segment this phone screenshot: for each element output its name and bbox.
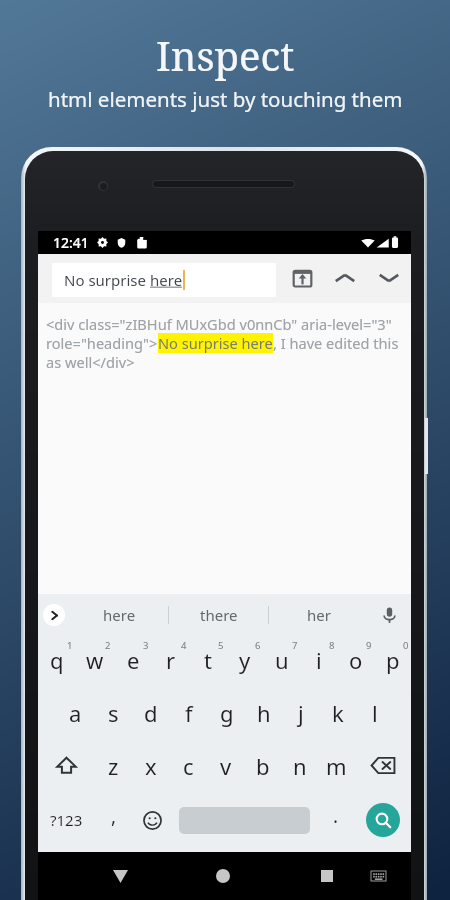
staticText: c xyxy=(183,751,194,781)
button[interactable]: ?123 xyxy=(38,791,94,849)
button[interactable]: g xyxy=(208,686,245,739)
staticText: f xyxy=(185,698,193,728)
staticText: l xyxy=(372,698,378,728)
button[interactable]: her xyxy=(269,594,368,635)
button[interactable]: d xyxy=(132,686,170,739)
button[interactable]: More suggestions xyxy=(38,594,70,635)
staticText: html elements just by touching them xyxy=(48,85,403,113)
button[interactable]: Switch keyboard xyxy=(358,856,398,896)
staticText: 8 xyxy=(329,639,335,652)
button[interactable]: i xyxy=(300,635,337,688)
button[interactable]: Previous match xyxy=(329,262,361,294)
button[interactable]: Search xyxy=(355,791,411,849)
button[interactable]: Recent apps xyxy=(303,852,351,900)
staticText: a xyxy=(69,698,82,728)
staticText: 3 xyxy=(143,639,149,652)
staticText: . xyxy=(333,803,339,829)
staticText: d xyxy=(144,698,158,728)
button[interactable]: e xyxy=(114,635,152,688)
button[interactable]: . xyxy=(316,791,355,849)
button[interactable]: r xyxy=(152,635,189,688)
button[interactable]: l xyxy=(356,686,393,739)
staticText: No surprise xyxy=(64,270,150,290)
staticText: 12:41 xyxy=(53,233,89,252)
button[interactable]: x xyxy=(132,739,170,792)
button[interactable]: s xyxy=(94,686,132,739)
button[interactable]: u xyxy=(263,635,300,688)
button[interactable]: t xyxy=(189,635,226,688)
staticText: 1 xyxy=(67,639,73,652)
staticText: e xyxy=(127,645,140,675)
button[interactable]: Back xyxy=(96,852,144,900)
button[interactable]: Next match xyxy=(373,262,405,294)
staticText: p xyxy=(386,645,400,675)
staticText: n xyxy=(293,751,307,781)
staticText: u xyxy=(275,645,289,675)
button[interactable]: y xyxy=(226,635,263,688)
button[interactable]: w xyxy=(76,635,114,688)
staticText: as well</div> xyxy=(46,352,135,372)
staticText: h xyxy=(257,698,271,728)
button[interactable]: p xyxy=(374,635,411,688)
button[interactable]: Home xyxy=(199,852,247,900)
button[interactable]: Shift xyxy=(38,739,94,792)
staticText: s xyxy=(108,698,119,728)
staticText: 7 xyxy=(292,639,298,652)
button[interactable]: Emoji xyxy=(133,791,172,849)
button[interactable]: Space xyxy=(172,791,316,849)
button[interactable]: h xyxy=(245,686,282,739)
button[interactable]: Voice input xyxy=(368,594,411,635)
button[interactable]: m xyxy=(318,739,355,792)
button[interactable]: here xyxy=(70,594,168,635)
staticText: o xyxy=(349,645,363,675)
button[interactable]: No surprise xyxy=(52,263,276,297)
staticText: , I have edited this xyxy=(273,333,399,353)
button[interactable]: q xyxy=(38,635,76,688)
staticText: <div class="zIBHuf MUxGbd v0nnCb" aria-l… xyxy=(46,314,392,334)
staticText: x xyxy=(145,751,157,781)
button[interactable]: v xyxy=(207,739,244,792)
staticText: 0 xyxy=(403,639,409,652)
staticText: k xyxy=(332,698,344,728)
staticText: z xyxy=(108,751,119,781)
staticText: role="heading"> xyxy=(46,333,158,353)
button[interactable]: there xyxy=(169,594,268,635)
staticText: , xyxy=(111,803,117,829)
button[interactable]: a xyxy=(56,686,94,739)
staticText: j xyxy=(298,698,304,728)
staticText: 5 xyxy=(218,639,224,652)
staticText: r xyxy=(166,645,176,675)
button[interactable]: b xyxy=(244,739,281,792)
button[interactable]: Open in browser xyxy=(286,262,318,294)
staticText: Inspect xyxy=(156,28,295,82)
staticText: q xyxy=(50,645,64,675)
staticText: i xyxy=(316,645,322,675)
staticText: No surprise here xyxy=(158,333,273,353)
staticText: here xyxy=(103,605,136,625)
button[interactable]: z xyxy=(94,739,132,792)
button[interactable]: o xyxy=(337,635,374,688)
staticText: 2 xyxy=(105,639,111,652)
button[interactable]: , xyxy=(94,791,133,849)
staticText: there xyxy=(200,605,238,625)
button[interactable]: c xyxy=(170,739,207,792)
staticText: v xyxy=(220,751,232,781)
button[interactable]: Backspace xyxy=(355,739,411,792)
button[interactable]: n xyxy=(281,739,318,792)
button[interactable]: k xyxy=(319,686,356,739)
staticText: m xyxy=(326,751,347,781)
staticText: g xyxy=(220,698,234,728)
button[interactable]: f xyxy=(170,686,208,739)
staticText: her xyxy=(307,605,331,625)
staticText: b xyxy=(256,751,270,781)
staticText: 9 xyxy=(366,639,372,652)
staticText: y xyxy=(239,645,251,675)
button[interactable]: j xyxy=(282,686,319,739)
staticText: ?123 xyxy=(50,810,83,830)
staticText: w xyxy=(86,645,104,675)
staticText: 4 xyxy=(181,639,187,652)
staticText: 6 xyxy=(255,639,261,652)
staticText: here xyxy=(150,270,183,290)
staticText: t xyxy=(204,645,212,675)
